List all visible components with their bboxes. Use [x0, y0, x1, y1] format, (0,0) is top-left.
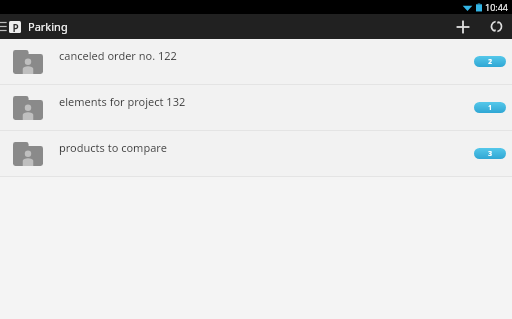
staticText: 1 — [488, 103, 492, 112]
button[interactable]: canceled order no. 122 — [0, 39, 512, 84]
button[interactable]: Navigation menu — [0, 14, 72, 39]
button[interactable]: products to compare — [0, 131, 512, 176]
staticText: products to compare — [59, 140, 167, 155]
staticText: 10:44 — [485, 1, 509, 13]
staticText: P — [12, 21, 19, 33]
staticText: 2 — [488, 57, 492, 66]
staticText: canceled order no. 122 — [59, 48, 177, 63]
staticText: 3 — [488, 149, 492, 158]
other: Navigation menu — [0, 14, 7, 39]
button[interactable]: elements for project 132 — [0, 85, 512, 130]
button[interactable]: Refresh — [480, 14, 512, 39]
button[interactable]: Add — [446, 14, 480, 39]
staticText: Parking — [28, 19, 68, 34]
staticText: elements for project 132 — [59, 94, 186, 109]
